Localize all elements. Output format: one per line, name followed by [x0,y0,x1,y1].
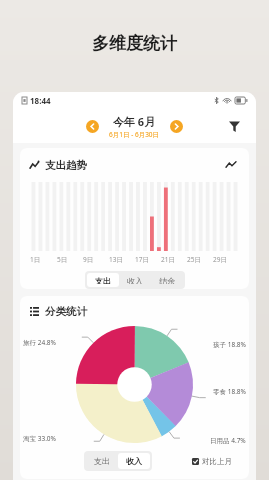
staticText: 零食 18.8% [213,387,246,396]
button[interactable]: Next period [170,120,183,133]
staticText: 淘宝 33.0% [23,434,56,443]
button[interactable]: Switch chart type [223,157,239,173]
staticText: 支出趋势 [45,159,87,172]
button[interactable]: Previous period [86,120,99,133]
staticText: 5日 [57,255,68,264]
staticText: 对比上月 [202,457,232,466]
staticText: 17日 [135,255,149,264]
staticText: 旅行 24.8% [23,338,56,347]
staticText: 21日 [161,255,175,264]
staticText: 收入 [127,276,143,284]
button[interactable]: Filter [223,115,245,137]
staticText: 结余 [159,276,175,284]
staticText: 18:44 [30,95,51,106]
staticText: 孩子 18.8% [213,340,246,349]
button[interactable]: 收入 [118,453,150,469]
staticText: 6月1日 - 6月30日 [109,130,160,139]
staticText: 29日 [213,255,227,264]
staticText: 今年 6月 [113,114,156,129]
staticText: 支出 [95,276,111,284]
button[interactable]: 收入 [119,273,151,287]
staticText: 分类统计 [45,305,87,318]
staticText: 收入 [126,456,142,466]
staticText: 13日 [109,255,123,264]
button[interactable]: 对比上月 [192,457,232,466]
staticText: 25日 [187,255,201,264]
button[interactable]: 支出 [86,453,118,469]
button[interactable]: 支出 [87,273,119,287]
staticText: 多维度统计 [92,33,177,54]
staticText: 日用品 4.7% [210,436,246,445]
staticText: 9日 [83,255,94,264]
staticText: 1日 [30,255,41,264]
staticText: 支出 [94,456,110,466]
button[interactable]: 结余 [151,273,183,287]
